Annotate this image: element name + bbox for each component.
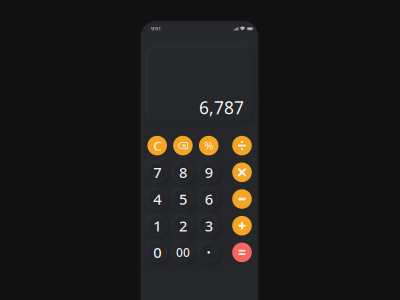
button[interactable]: Equals [231, 242, 253, 263]
button[interactable]: 6 [196, 186, 221, 212]
staticText: 9 [205, 163, 213, 182]
button[interactable]: 9 [196, 159, 221, 185]
staticText: 00 [176, 244, 190, 260]
staticText: 7 [153, 163, 161, 182]
staticText: 3 [205, 216, 213, 235]
button[interactable]: % [198, 135, 219, 156]
button[interactable]: 0 [144, 240, 170, 265]
staticText: 0 [153, 243, 161, 262]
button[interactable]: 5 [170, 186, 196, 212]
button[interactable]: 1 [144, 213, 170, 238]
staticText: 5 [179, 189, 187, 209]
button[interactable]: Delete [172, 135, 194, 156]
button[interactable]: Subtract [231, 188, 253, 210]
button[interactable]: C [146, 135, 168, 156]
staticText: 2 [179, 216, 187, 235]
button[interactable]: 3 [196, 213, 221, 238]
staticText: 1 [153, 216, 161, 235]
button[interactable]: 4 [144, 186, 170, 212]
staticText: 9:41 [151, 25, 161, 32]
staticText: 8 [179, 163, 187, 182]
button[interactable]: 2 [170, 213, 196, 238]
button[interactable]: Multiply [231, 161, 253, 183]
button[interactable]: Divide [231, 135, 253, 156]
staticText: 4 [153, 189, 161, 209]
button[interactable]: Add [231, 215, 253, 236]
button[interactable]: 8 [170, 159, 196, 185]
staticText: 6 [205, 189, 213, 209]
staticText: C [153, 137, 161, 154]
button[interactable]: 00 [170, 240, 196, 265]
staticText: % [204, 138, 213, 153]
button[interactable]: Decimal point [196, 240, 221, 265]
button[interactable]: 7 [144, 159, 170, 185]
staticText: 6,787 [199, 96, 244, 119]
